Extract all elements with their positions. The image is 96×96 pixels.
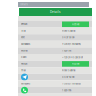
- button[interactable]: Mother: [18, 47, 92, 54]
- button[interactable]: Windows: [18, 41, 92, 47]
- staticText: Mother: [21, 49, 28, 52]
- button[interactable]: Person: [18, 21, 92, 28]
- staticText: Trial: [21, 29, 26, 32]
- staticText: TUBE(1 minutes): [62, 43, 81, 45]
- staticText: 1 829 795: [62, 49, 71, 52]
- staticText: Person: [21, 62, 27, 65]
- button[interactable]: Cash: [18, 54, 92, 61]
- button[interactable]: Address bar: [18, 2, 89, 7]
- staticText: Rose Sabina: [62, 29, 75, 32]
- button[interactable]: Port: [18, 34, 92, 41]
- button[interactable]: Trial: [18, 67, 92, 74]
- staticText: Windows: [21, 43, 30, 45]
- staticText: contacts: [20, 3, 28, 6]
- button[interactable]: 1 829 795: [18, 87, 92, 94]
- staticText: Active: [72, 62, 79, 65]
- staticText: Active: [72, 23, 79, 26]
- staticText: Rose Sabina: [62, 69, 75, 72]
- staticText: 1 829 795: [62, 89, 71, 92]
- staticText: Details: [50, 10, 61, 14]
- button[interactable]: Person: [18, 61, 92, 67]
- button[interactable]: Trial: [18, 28, 92, 34]
- staticText: Person: [21, 23, 27, 26]
- staticText: 0437 5099: [62, 76, 74, 78]
- staticText: Port: [21, 36, 25, 39]
- staticText: Windows: [21, 82, 30, 85]
- staticText: 0437 5099: [62, 36, 74, 39]
- button[interactable]: Windows: [18, 80, 92, 87]
- staticText: Cash: [21, 56, 26, 59]
- button[interactable]: 0437 5099: [18, 74, 92, 80]
- staticText: Trial: [21, 69, 26, 72]
- staticText: +129 2445 28/33 81: [62, 56, 83, 59]
- staticText: TUBE(1 minutes): [62, 82, 81, 85]
